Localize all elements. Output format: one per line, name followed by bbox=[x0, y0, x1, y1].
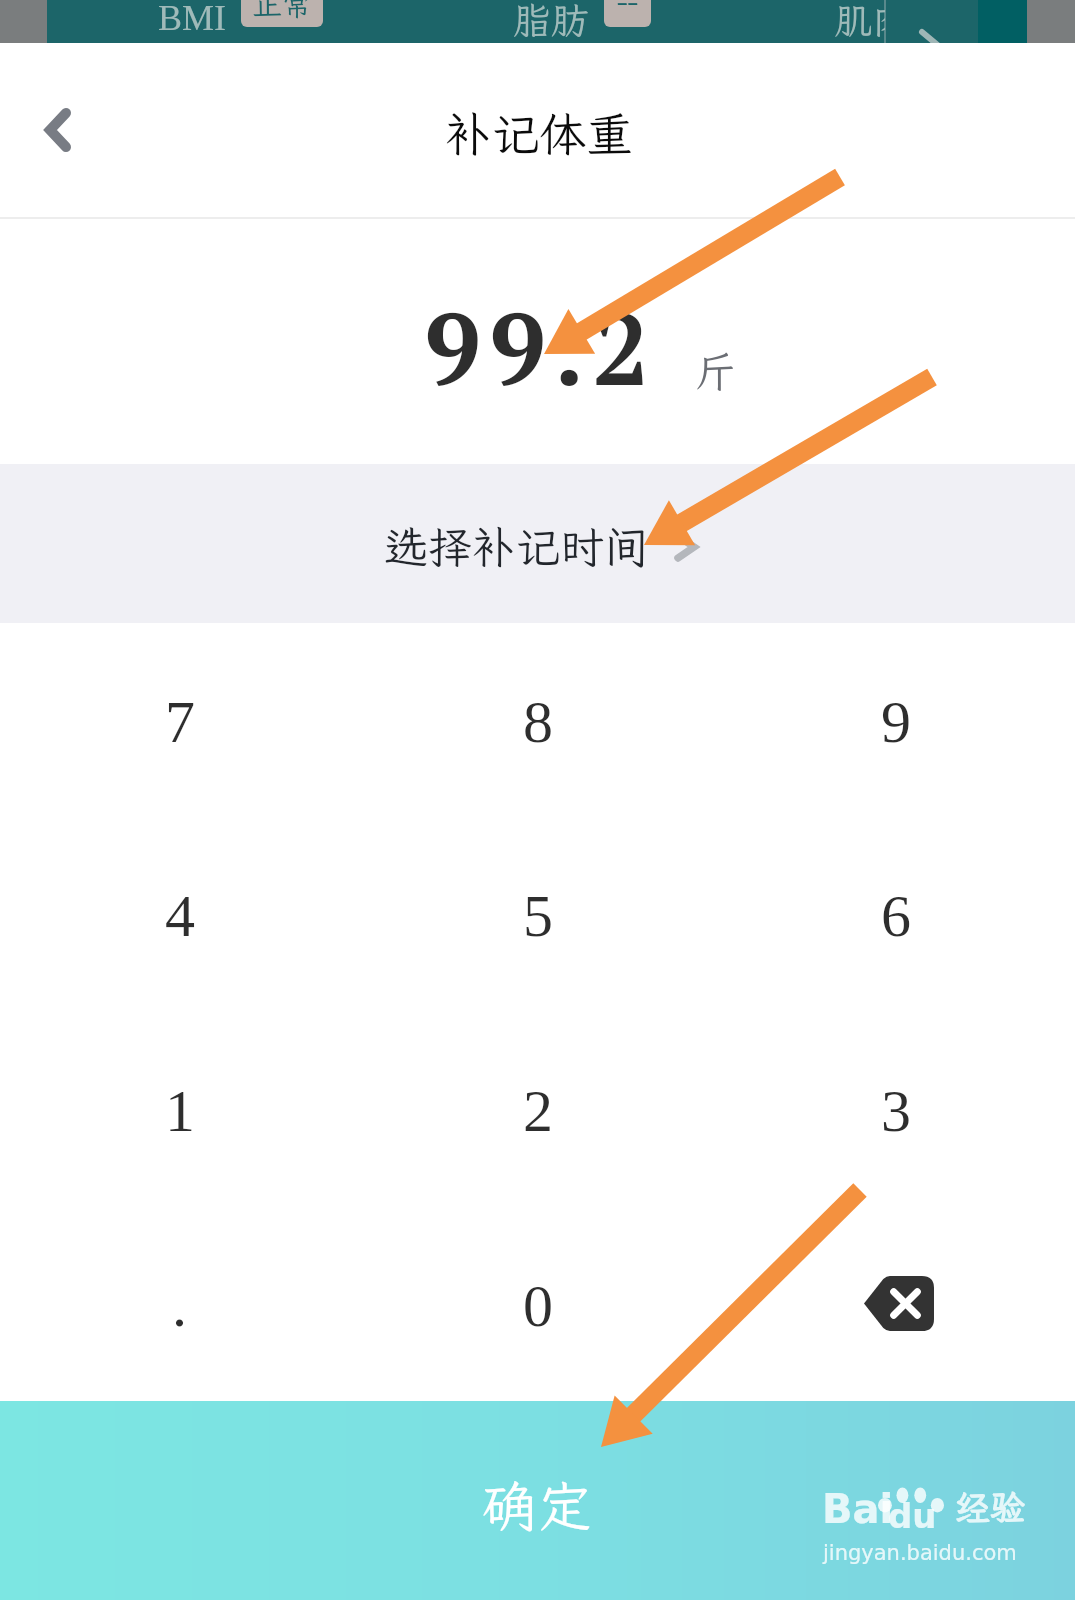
staticText: 0 bbox=[523, 1273, 553, 1339]
staticText: . bbox=[172, 1273, 187, 1339]
staticText: 5 bbox=[523, 883, 553, 949]
staticText: 3 bbox=[881, 1078, 911, 1144]
staticText: 确定 bbox=[482, 1469, 593, 1541]
staticText: BMI bbox=[158, 0, 227, 38]
staticText: du bbox=[888, 1496, 937, 1536]
other: Backspace bbox=[858, 1276, 934, 1331]
staticText: 7 bbox=[165, 689, 195, 755]
staticText: 6 bbox=[881, 883, 911, 949]
button[interactable]: 6 bbox=[717, 817, 1075, 1011]
staticText: 9 bbox=[881, 689, 911, 755]
button[interactable]: 2 bbox=[359, 1011, 717, 1206]
button[interactable]: 选择补记时间 bbox=[0, 464, 1075, 623]
staticText: 2 bbox=[523, 1078, 553, 1144]
staticText: 99.2 bbox=[424, 280, 658, 414]
button[interactable]: . bbox=[0, 1206, 359, 1401]
button[interactable]: 5 bbox=[359, 817, 717, 1011]
staticText: 肌肉 bbox=[834, 0, 885, 38]
button[interactable]: 8 bbox=[359, 623, 717, 817]
staticText: 脂肪 bbox=[513, 0, 590, 38]
staticText: 斤 bbox=[695, 344, 738, 399]
button[interactable]: 7 bbox=[0, 623, 359, 817]
staticText: 补记体重 bbox=[445, 102, 633, 164]
staticText: 8 bbox=[523, 689, 553, 755]
button[interactable]: Backspace bbox=[717, 1206, 1075, 1401]
staticText: 1 bbox=[165, 1078, 195, 1144]
button[interactable]: 1 bbox=[0, 1011, 359, 1206]
staticText: -- bbox=[617, 0, 638, 21]
staticText: 选择补记时间 bbox=[384, 518, 648, 576]
button[interactable]: 0 bbox=[359, 1206, 717, 1401]
staticText: 经验 bbox=[955, 1484, 1026, 1530]
staticText: 正常 bbox=[252, 0, 312, 24]
button[interactable]: 4 bbox=[0, 817, 359, 1011]
button[interactable]: 9 bbox=[717, 623, 1075, 817]
staticText: 4 bbox=[165, 883, 195, 949]
button[interactable]: 3 bbox=[717, 1011, 1075, 1206]
staticText: jingyan.baidu.com bbox=[823, 1541, 1017, 1565]
button[interactable]: Back bbox=[14, 86, 102, 174]
button[interactable]: 确定 bbox=[0, 1401, 1075, 1600]
staticText: Bai bbox=[822, 1486, 894, 1533]
